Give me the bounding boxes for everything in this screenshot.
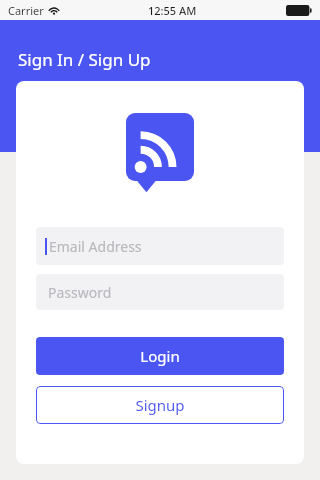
button[interactable]: Password (36, 274, 284, 310)
button[interactable]: Signup (36, 386, 284, 424)
staticText: Carrier (8, 3, 44, 18)
staticText: Password (48, 283, 112, 302)
staticText: 12:55 AM (148, 3, 197, 18)
button[interactable]: Email Address (36, 227, 284, 265)
button[interactable]: Login (36, 337, 284, 375)
staticText: Email Address (49, 237, 142, 256)
other: App logo (126, 113, 194, 191)
staticText: Login (140, 346, 180, 366)
staticText: Signup (135, 395, 185, 415)
staticText: Sign In / Sign Up (18, 48, 151, 71)
